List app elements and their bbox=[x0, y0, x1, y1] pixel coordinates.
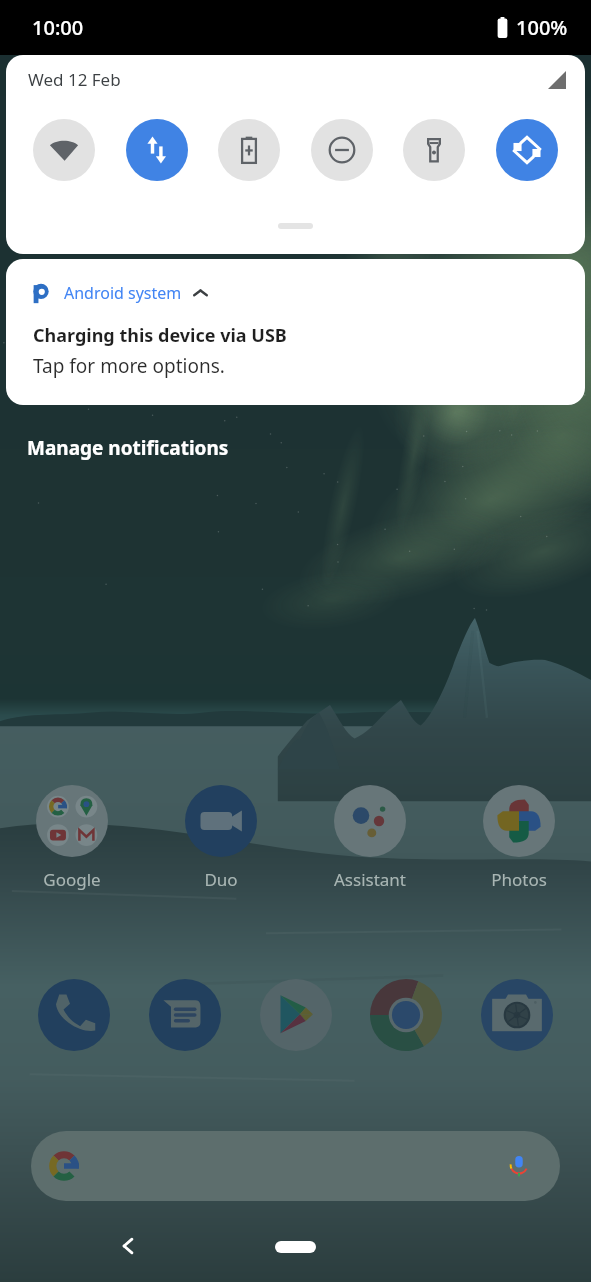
staticText: Wed 12 Feb bbox=[28, 68, 121, 91]
button[interactable]: Back bbox=[119, 1237, 137, 1255]
button[interactable]: Duo bbox=[166, 785, 276, 891]
staticText: 10:00 bbox=[32, 14, 84, 41]
button[interactable]: Chrome bbox=[370, 979, 442, 1051]
button[interactable]: Camera bbox=[481, 979, 553, 1051]
staticText: Assistant bbox=[334, 868, 406, 891]
button[interactable]: Manage notifications bbox=[27, 435, 229, 461]
staticText: 100% bbox=[516, 14, 568, 41]
staticText: Charging this device via USB bbox=[33, 323, 287, 348]
button[interactable]: Home bbox=[275, 1241, 316, 1253]
button[interactable]: Voice search bbox=[31, 1131, 560, 1201]
staticText: Tap for more options. bbox=[33, 353, 225, 379]
button[interactable]: Play Store bbox=[260, 979, 332, 1051]
staticText: Google bbox=[43, 868, 101, 891]
button[interactable]: Android system bbox=[6, 259, 585, 405]
button[interactable]: Photos bbox=[464, 785, 574, 891]
button[interactable]: Messages bbox=[149, 979, 221, 1051]
button[interactable]: Mobile data bbox=[126, 119, 188, 181]
button[interactable]: Flashlight bbox=[403, 119, 465, 181]
button[interactable]: Auto-rotate bbox=[496, 119, 558, 181]
button[interactable]: Do Not Disturb bbox=[311, 119, 373, 181]
other: Voice search bbox=[508, 1155, 530, 1177]
staticText: Android system bbox=[64, 282, 182, 304]
staticText: Photos bbox=[491, 868, 547, 891]
button[interactable]: Google bbox=[17, 785, 127, 891]
button[interactable]: Battery Saver bbox=[218, 119, 280, 181]
button[interactable]: Expand quick settings bbox=[278, 223, 313, 229]
staticText: Duo bbox=[204, 868, 238, 891]
button[interactable]: Wi-Fi bbox=[33, 119, 95, 181]
button[interactable]: Phone bbox=[38, 979, 110, 1051]
button[interactable]: Assistant bbox=[315, 785, 425, 891]
